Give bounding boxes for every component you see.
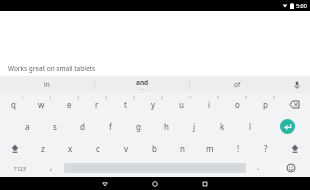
staticText: u (179, 99, 184, 110)
staticText: 5 (133, 95, 136, 100)
staticText: y (151, 99, 156, 110)
button[interactable]: Recent apps (180, 177, 230, 190)
staticText: 7 (189, 95, 192, 100)
button[interactable]: ? (252, 137, 280, 159)
button[interactable]: c (84, 137, 112, 159)
button[interactable]: Shift (280, 137, 310, 159)
button[interactable]: j (180, 115, 208, 137)
staticText: 9 (245, 95, 248, 100)
button[interactable]: v (112, 137, 140, 159)
staticText: w (38, 99, 45, 110)
button[interactable]: Home (130, 177, 180, 190)
staticText: q (11, 99, 16, 110)
staticText: b (152, 143, 157, 154)
staticText: c (96, 143, 100, 154)
button[interactable]: g (124, 115, 152, 137)
button[interactable]: Enter (264, 115, 310, 137)
button[interactable]: s (41, 115, 68, 137)
staticText: 4 (105, 95, 108, 100)
button[interactable]: b (140, 137, 168, 159)
button[interactable]: y (139, 93, 167, 115)
staticText: h (164, 121, 169, 132)
button[interactable]: m (196, 137, 224, 159)
button[interactable]: . (246, 159, 271, 177)
button[interactable]: d (68, 115, 96, 137)
button[interactable]: z (29, 137, 56, 159)
button[interactable]: Shift (0, 137, 29, 159)
staticText: j (193, 121, 196, 132)
staticText: n (180, 143, 185, 154)
staticText: d (80, 121, 85, 132)
button[interactable]: q (0, 93, 27, 115)
staticText: 3 (77, 95, 80, 100)
button[interactable]: w (27, 93, 55, 115)
staticText: e (67, 99, 72, 110)
staticText: 5:00 (296, 2, 307, 9)
button[interactable]: ?123 (0, 159, 39, 177)
staticText: o (235, 99, 240, 110)
staticText: z (41, 143, 45, 154)
staticText: 1 (21, 95, 24, 100)
button[interactable]: x (56, 137, 84, 159)
staticText: 2 (49, 95, 52, 100)
button[interactable]: a (14, 115, 41, 137)
button[interactable]: ! (224, 137, 252, 159)
button[interactable]: Back (80, 177, 130, 190)
staticText: x (68, 143, 73, 154)
staticText: 8 (217, 95, 220, 100)
staticText: of (234, 80, 241, 89)
button[interactable]: p (251, 93, 279, 115)
button[interactable]: t (111, 93, 139, 115)
button[interactable]: Emoji (271, 159, 310, 177)
staticText: 6 (161, 95, 164, 100)
staticText: 0 (273, 95, 276, 100)
button[interactable]: Backspace (279, 93, 310, 115)
staticText: m (206, 143, 214, 154)
staticText: ••• (141, 88, 145, 92)
staticText: p (263, 99, 268, 110)
staticText: ! (237, 143, 240, 154)
staticText: Works great on small tablets (8, 64, 96, 73)
staticText: v (124, 143, 129, 154)
staticText: . (257, 161, 260, 172)
staticText: a (25, 121, 30, 132)
staticText: , (50, 161, 53, 172)
button[interactable]: i (195, 93, 223, 115)
button[interactable]: of (190, 76, 284, 93)
button[interactable]: , (39, 159, 64, 177)
button[interactable]: and (95, 76, 189, 93)
button[interactable]: Voice input (284, 76, 310, 93)
button[interactable]: e (55, 93, 83, 115)
staticText: i (208, 99, 211, 110)
staticText: s (53, 121, 57, 132)
button[interactable]: o (223, 93, 251, 115)
button[interactable]: in (0, 76, 94, 93)
staticText: g (136, 121, 141, 132)
button[interactable]: k (208, 115, 236, 137)
staticText: r (95, 99, 99, 110)
staticText: t (124, 99, 127, 110)
button[interactable]: l (236, 115, 264, 137)
button[interactable]: n (168, 137, 196, 159)
staticText: f (109, 121, 112, 132)
button[interactable]: h (152, 115, 180, 137)
staticText: k (220, 121, 225, 132)
button[interactable]: u (167, 93, 195, 115)
staticText: and (136, 78, 149, 87)
button[interactable]: f (96, 115, 124, 137)
staticText: l (249, 121, 252, 132)
button[interactable]: r (83, 93, 111, 115)
staticText: ? (264, 143, 268, 154)
staticText: in (44, 80, 50, 89)
staticText: ?123 (14, 165, 26, 172)
